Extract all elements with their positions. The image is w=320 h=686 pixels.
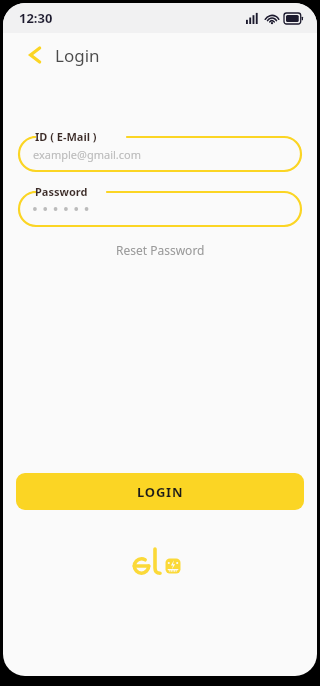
staticText: example@gmail.com	[33, 147, 142, 162]
staticText: ID ( E-Mail )	[35, 129, 97, 144]
staticText: LOGIN	[137, 483, 184, 501]
staticText: Reset Password	[116, 242, 205, 258]
staticText: 12:30	[19, 9, 53, 27]
button[interactable]: Reset Password	[3, 242, 317, 258]
button[interactable]: Back	[23, 43, 47, 67]
button[interactable]: LOGIN	[16, 473, 304, 510]
button[interactable]: example@gmail.com	[33, 137, 301, 171]
button[interactable]	[33, 192, 301, 226]
staticText: Login	[55, 44, 100, 67]
staticText: Password	[35, 184, 88, 199]
